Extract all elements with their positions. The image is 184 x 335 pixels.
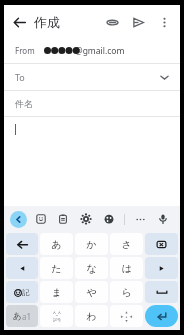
staticText: From [15, 45, 35, 56]
button[interactable]: Clipboard [55, 211, 71, 227]
staticText: わ [86, 310, 97, 323]
button[interactable]: か [75, 233, 108, 255]
button[interactable]: た [40, 257, 73, 279]
button[interactable]: や [75, 281, 108, 303]
staticText: ま [51, 286, 62, 299]
button[interactable]: Stickers [33, 211, 49, 227]
staticText: To [15, 71, 25, 83]
button[interactable]: Themes [101, 211, 117, 227]
staticText: は [121, 262, 132, 275]
staticText: な [86, 262, 97, 275]
staticText: か [86, 238, 97, 251]
button[interactable]: ら [110, 281, 143, 303]
button[interactable]: ま [40, 281, 73, 303]
button[interactable]: 記 [6, 281, 38, 303]
staticText: た [51, 262, 62, 275]
staticText: や [86, 286, 97, 299]
button[interactable] [145, 257, 178, 279]
staticText: a1 [22, 311, 32, 322]
button[interactable]: Attach file [99, 9, 125, 35]
button[interactable]: Send [125, 9, 151, 35]
button[interactable]: From [4, 38, 180, 63]
button[interactable]: Back [4, 7, 34, 37]
button[interactable]: Collapse toolbar [10, 211, 27, 228]
button[interactable]: あ [40, 233, 73, 255]
button[interactable] [4, 117, 180, 206]
button[interactable]: な [75, 257, 108, 279]
button[interactable]: は [110, 257, 143, 279]
button[interactable] [6, 257, 38, 279]
staticText: @gmail.com [75, 45, 125, 57]
button[interactable]: To [4, 64, 180, 90]
button[interactable]: Settings [78, 211, 94, 227]
staticText: ら [121, 286, 132, 299]
staticText: 作成 [34, 14, 60, 30]
button[interactable] [145, 281, 178, 303]
button[interactable]: わ [75, 305, 108, 327]
button[interactable]: More [132, 211, 148, 227]
button[interactable]: さ [110, 233, 143, 255]
staticText: 記号 [53, 317, 61, 322]
staticText: 件名 [15, 98, 33, 109]
button[interactable] [145, 233, 178, 255]
staticText: あ [51, 238, 62, 251]
staticText: ^_^ [53, 310, 61, 317]
button[interactable]: More options [151, 9, 177, 35]
button[interactable]: 件名 [4, 91, 180, 116]
button[interactable]: あ [6, 305, 38, 327]
button[interactable]: ^_^ [40, 305, 73, 327]
staticText: 記 [22, 288, 30, 297]
button[interactable] [6, 233, 38, 255]
staticText: あ [13, 311, 22, 322]
staticText: さ [121, 238, 132, 251]
button[interactable] [110, 305, 143, 327]
button[interactable]: Voice input [155, 211, 171, 227]
button[interactable] [145, 305, 178, 327]
